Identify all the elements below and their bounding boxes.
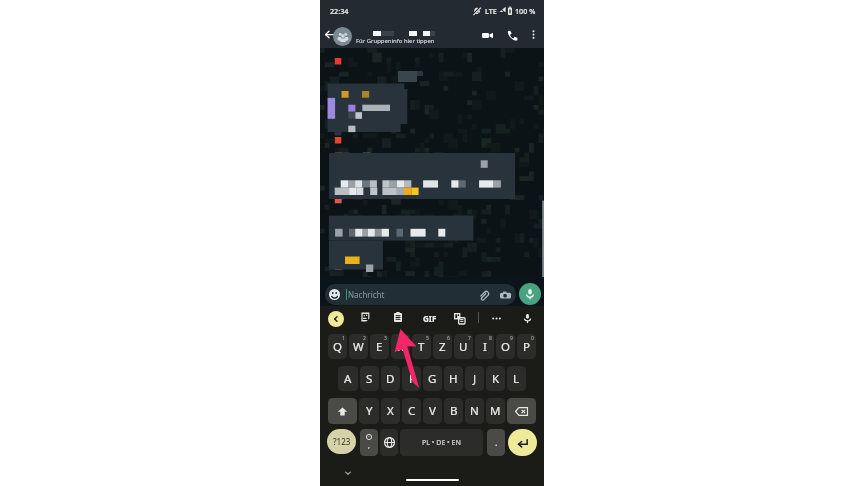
staticText: 3	[384, 335, 387, 342]
staticText: O	[501, 339, 510, 355]
staticText: F	[409, 371, 415, 387]
staticText: Y	[366, 403, 373, 419]
staticText: Q	[333, 339, 342, 355]
staticText: 1	[342, 335, 345, 342]
staticText: R	[397, 339, 405, 355]
staticText: X	[387, 403, 394, 419]
button[interactable]: Back	[321, 26, 338, 43]
button[interactable]: Enter	[508, 429, 537, 456]
button[interactable]: Voice call	[503, 26, 521, 44]
button[interactable]: D	[381, 366, 400, 391]
button[interactable]: J	[465, 366, 484, 391]
staticText: 7	[468, 335, 471, 342]
staticText: GIF	[423, 313, 437, 324]
button[interactable]: Shift	[328, 398, 357, 424]
staticText: Nachricht	[348, 289, 385, 300]
staticText: B	[450, 403, 458, 419]
button[interactable]: Emoji	[329, 289, 340, 300]
staticText: ,	[368, 441, 370, 451]
staticText: T	[418, 339, 425, 355]
staticText: U	[459, 339, 468, 355]
staticText: P	[523, 339, 530, 355]
button[interactable]: Attach	[476, 288, 490, 302]
button[interactable]: G	[423, 366, 442, 391]
button[interactable]: Change language	[380, 429, 398, 456]
staticText: A	[344, 371, 352, 387]
staticText: Z	[439, 339, 446, 355]
button[interactable]: Translate	[452, 311, 467, 326]
button[interactable]: T	[412, 334, 431, 359]
button[interactable]: X	[381, 398, 400, 424]
button[interactable]: S	[360, 366, 379, 391]
button[interactable]: H	[444, 366, 463, 391]
staticText: 5	[426, 335, 429, 342]
button[interactable]: Emoji and comma	[360, 429, 378, 456]
button[interactable]: Video call	[478, 26, 496, 44]
button[interactable]: A	[338, 366, 358, 391]
button[interactable]: W	[349, 334, 368, 359]
staticText: K	[492, 371, 500, 387]
staticText: I	[483, 339, 487, 355]
staticText: 100 %	[515, 6, 536, 16]
button[interactable]: PL • DE • EN	[400, 429, 483, 456]
button[interactable]: Voice message	[519, 283, 541, 305]
button[interactable]: E	[370, 334, 389, 359]
staticText: ?123	[333, 436, 351, 447]
button[interactable]: More options	[525, 26, 541, 42]
staticText: Für Gruppeninfo hier tippen	[356, 37, 435, 45]
button[interactable]: .	[487, 429, 505, 456]
staticText: E	[376, 339, 383, 355]
button[interactable]: GIF	[421, 311, 439, 326]
button[interactable]: Y	[359, 398, 379, 424]
button[interactable]: More keyboard options	[489, 311, 504, 326]
button[interactable]: B	[444, 398, 463, 424]
staticText: PL • DE • EN	[422, 438, 461, 448]
staticText: LTE	[485, 6, 497, 16]
button[interactable]: F	[402, 366, 421, 391]
button[interactable]: P	[517, 334, 536, 359]
button[interactable]: U	[454, 334, 473, 359]
button[interactable]: O	[496, 334, 515, 359]
button[interactable]: R	[391, 334, 410, 359]
button[interactable]: Q	[328, 334, 347, 359]
staticText: M	[490, 403, 501, 419]
staticText: G	[428, 371, 437, 387]
staticText: S	[366, 371, 373, 387]
staticText: D	[386, 371, 395, 387]
staticText: V	[429, 403, 436, 419]
button[interactable]: Hide keyboard	[342, 467, 354, 479]
button[interactable]: Backspace	[507, 398, 536, 424]
button[interactable]: Collapse toolbar	[328, 311, 344, 327]
button[interactable]: Group avatar	[333, 27, 352, 46]
button[interactable]: N	[465, 398, 484, 424]
staticText: 8	[489, 335, 492, 342]
staticText: N	[470, 403, 479, 419]
staticText: H	[449, 371, 458, 387]
button[interactable]: M	[486, 398, 505, 424]
staticText: J	[473, 371, 477, 387]
staticText: 9	[510, 335, 513, 342]
button[interactable]: Stickers	[360, 312, 370, 322]
button[interactable]: Z	[433, 334, 452, 359]
button[interactable]: Voice input	[520, 311, 535, 326]
staticText: 22:34	[330, 6, 349, 16]
button[interactable]: Camera	[498, 288, 512, 302]
button[interactable]: C	[402, 398, 421, 424]
button[interactable]: L	[507, 366, 526, 391]
staticText: 6	[447, 335, 450, 342]
staticText: C	[408, 403, 416, 419]
staticText: L	[513, 371, 520, 387]
button[interactable]: K	[486, 366, 505, 391]
button[interactable]: ?123	[327, 429, 356, 454]
staticText: 4	[405, 335, 408, 342]
staticText: W	[353, 339, 364, 355]
button[interactable]: V	[423, 398, 442, 424]
staticText: 0	[531, 335, 534, 342]
button[interactable]: I	[475, 334, 494, 359]
staticText: .	[495, 436, 498, 448]
button[interactable]: Clipboard	[394, 312, 402, 322]
staticText: 2	[363, 335, 366, 342]
button[interactable]: Emoji	[325, 284, 516, 305]
